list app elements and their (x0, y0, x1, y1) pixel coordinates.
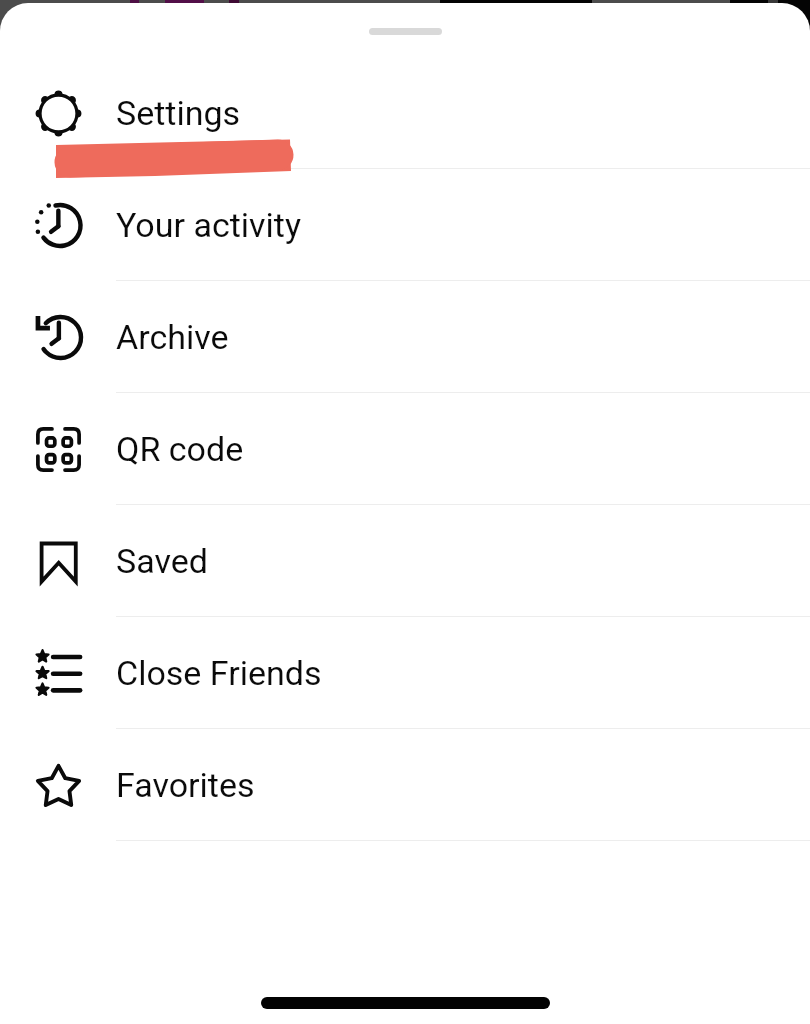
other: Favorites (35, 762, 82, 809)
other: Settings (35, 90, 82, 137)
other: Close Friends (35, 650, 82, 697)
button[interactable]: Settings (0, 57, 810, 169)
staticText: Your activity (116, 205, 302, 245)
other: QR code (35, 426, 82, 473)
button[interactable]: Favorites (0, 729, 810, 841)
button[interactable]: Close Friends (0, 617, 810, 729)
button[interactable]: QR code (0, 393, 810, 505)
staticText: Close Friends (116, 653, 322, 693)
staticText: QR code (116, 429, 244, 469)
other: Archive (35, 314, 82, 361)
staticText: Saved (116, 541, 208, 581)
button[interactable]: Archive (0, 281, 810, 393)
button[interactable]: Your activity (0, 169, 810, 281)
other: Saved (35, 538, 82, 585)
button[interactable]: Saved (0, 505, 810, 617)
staticText: Settings (116, 93, 241, 133)
staticText: Archive (116, 317, 229, 357)
other: Your activity (35, 202, 82, 249)
staticText: Favorites (116, 765, 255, 805)
